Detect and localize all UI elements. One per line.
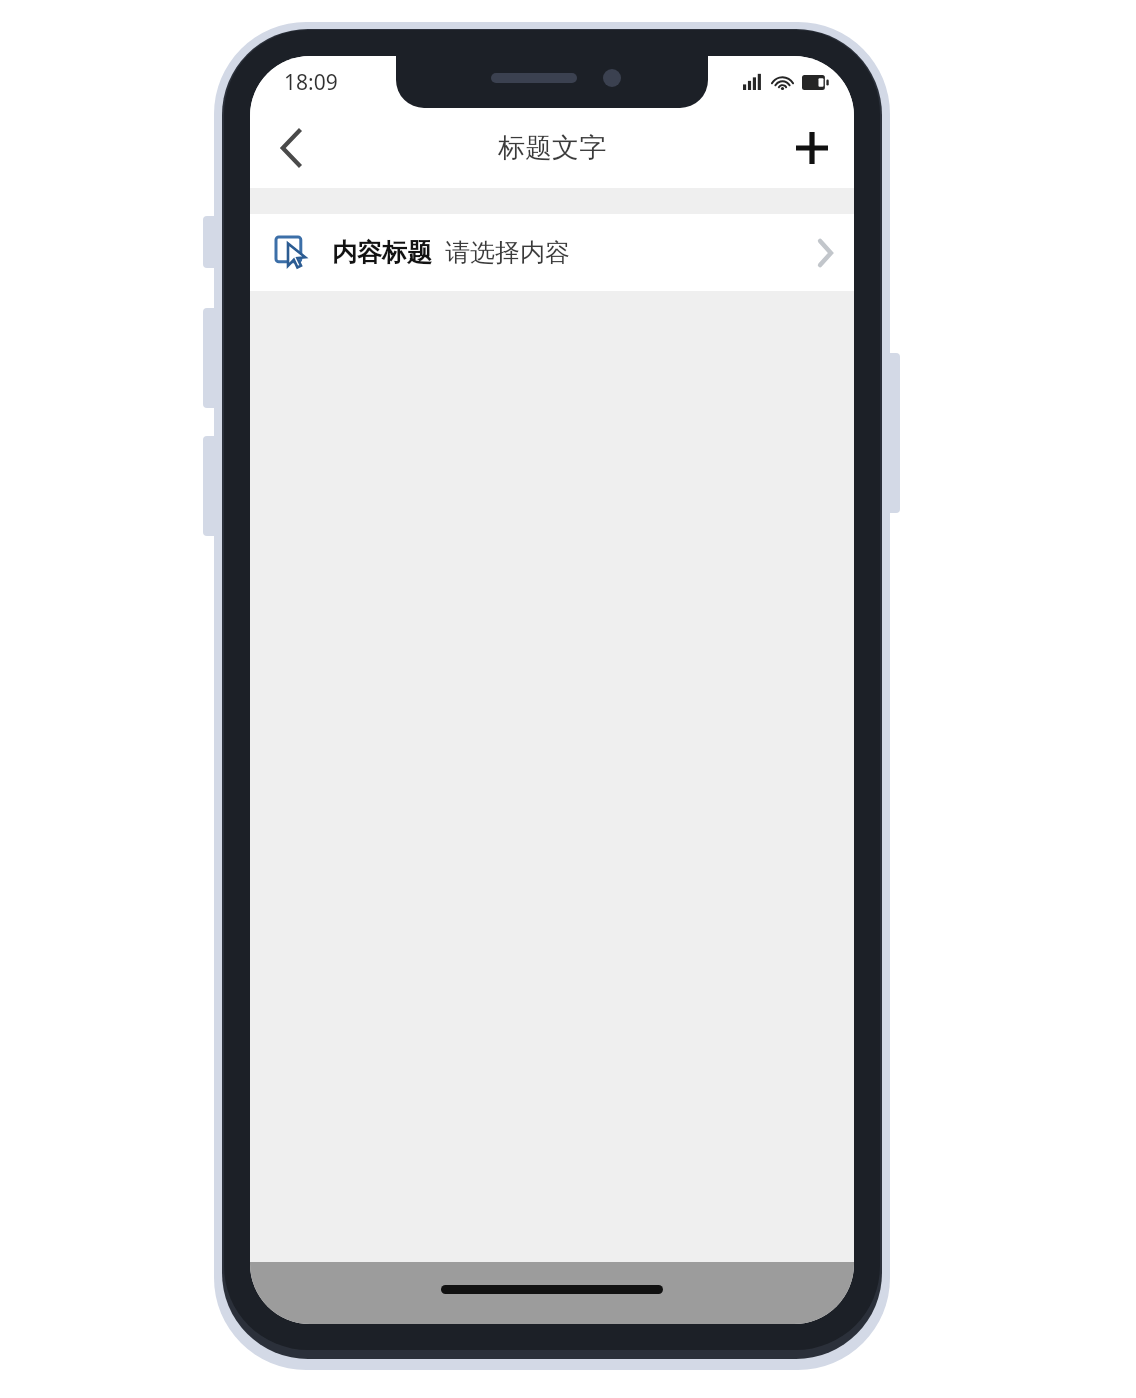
staticText: 18:09 [284,68,338,97]
button[interactable]: Back [260,116,324,180]
staticText: 标题文字 [498,131,606,165]
button[interactable]: 内容标题 [250,214,854,291]
button[interactable]: Add [780,116,844,180]
staticText: 请选择内容 [445,237,570,268]
staticText: 内容标题 [332,237,432,268]
